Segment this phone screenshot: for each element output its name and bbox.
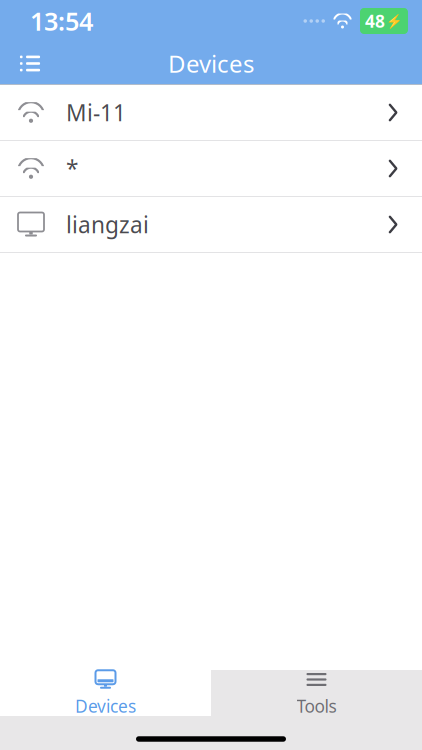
button[interactable]: Mi-11 — [0, 85, 422, 141]
staticText: Devices — [168, 48, 254, 79]
button[interactable]: Devices — [0, 670, 211, 716]
button[interactable]: Menu — [8, 41, 52, 85]
staticText: 13:54 — [30, 4, 93, 38]
staticText: 48 — [365, 9, 385, 32]
staticText: Tools — [296, 694, 336, 717]
staticText: Devices — [75, 694, 136, 717]
staticText: liangzai — [66, 209, 149, 239]
button[interactable]: * — [0, 141, 422, 197]
staticText: ⚡ — [386, 13, 403, 29]
button[interactable]: liangzai — [0, 197, 422, 253]
button[interactable]: Tools — [211, 670, 422, 716]
staticText: Mi-11 — [66, 97, 126, 127]
staticText: * — [66, 153, 78, 183]
